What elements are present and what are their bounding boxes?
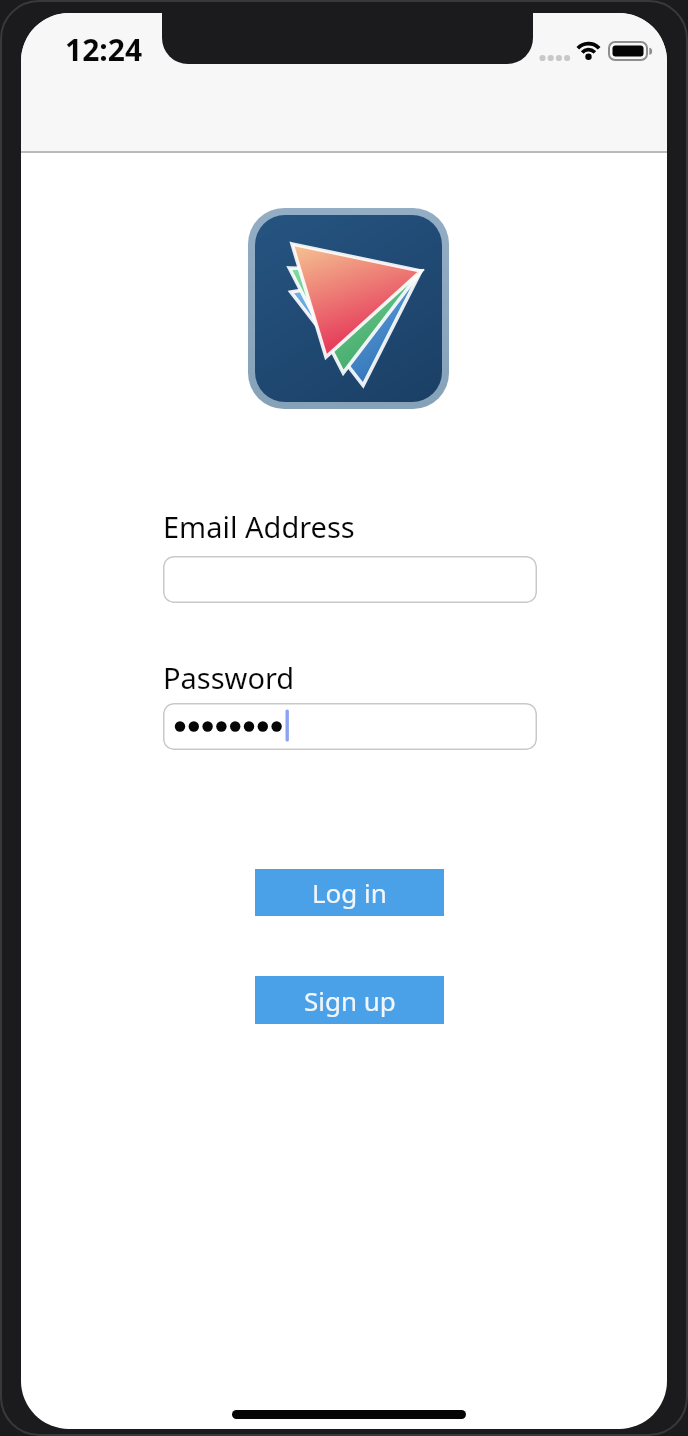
- staticText: 12:24: [65, 29, 143, 69]
- button[interactable]: [163, 556, 537, 603]
- staticText: Sign up: [304, 983, 396, 1018]
- staticText: Email Address: [163, 507, 355, 546]
- button[interactable]: Sign up: [255, 976, 444, 1024]
- staticText: Password: [163, 658, 295, 697]
- button[interactable]: [163, 703, 537, 750]
- staticText: Log in: [312, 875, 387, 910]
- button[interactable]: Log in: [255, 869, 444, 916]
